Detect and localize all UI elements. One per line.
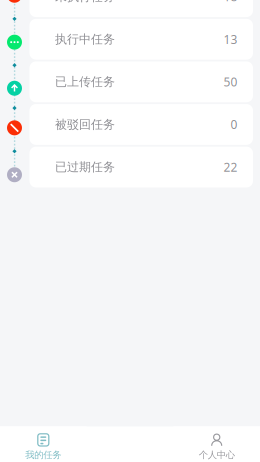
button[interactable]: 个人中心 [173, 426, 260, 462]
staticText: 我的任务 [25, 449, 61, 461]
staticText: 未执行任务 [55, 0, 115, 4]
staticText: 被驳回任务 [55, 117, 115, 132]
staticText: 已上传任务 [55, 74, 115, 89]
button[interactable]: 未执行任务 [29, 0, 253, 17]
staticText: 18 [223, 0, 237, 5]
staticText: 已过期任务 [55, 160, 115, 174]
staticText: 22 [223, 159, 237, 175]
staticText: 个人中心 [199, 449, 235, 461]
button[interactable]: 被驳回任务 [29, 104, 253, 145]
button[interactable]: 已上传任务 [29, 61, 253, 102]
staticText: 执行中任务 [55, 32, 115, 47]
button[interactable]: 我的任务 [0, 426, 87, 462]
button[interactable]: 已过期任务 [29, 147, 253, 187]
staticText: 0 [230, 116, 237, 132]
staticText: 13 [223, 31, 237, 47]
button[interactable]: 执行中任务 [29, 19, 253, 60]
staticText: 50 [223, 74, 237, 90]
